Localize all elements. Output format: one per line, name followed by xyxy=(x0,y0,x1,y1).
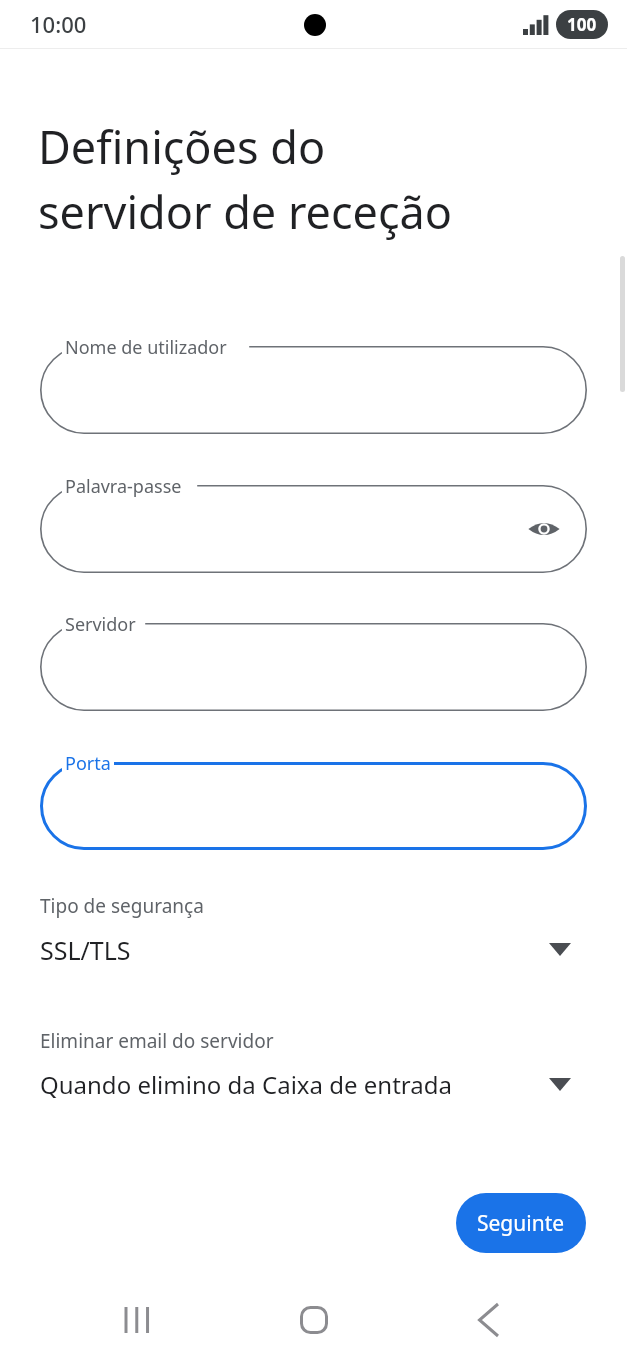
staticText: SSL/TLS xyxy=(40,933,131,967)
staticText: Palavra-passe xyxy=(65,474,182,499)
staticText: Nome de utilizador xyxy=(65,335,227,360)
staticText: Quando elimino da Caixa de entrada xyxy=(40,1068,452,1101)
staticText: Seguinte xyxy=(477,1209,565,1238)
button[interactable] xyxy=(40,485,587,573)
button[interactable]: Seguinte xyxy=(456,1193,586,1253)
button[interactable]: Voltar xyxy=(455,1287,521,1353)
staticText: Eliminar email do servidor xyxy=(40,1028,274,1054)
staticText: 10:00 xyxy=(30,9,87,39)
staticText: Definições do xyxy=(38,116,326,177)
staticText: Tipo de segurança xyxy=(40,893,204,919)
button[interactable] xyxy=(40,346,587,434)
staticText: 100 xyxy=(567,13,597,36)
button[interactable]: Recentes xyxy=(106,1287,172,1353)
button[interactable]: Eliminar email do servidor xyxy=(0,1028,627,1123)
button[interactable] xyxy=(40,623,587,711)
button[interactable]: Mostrar palavra-passe xyxy=(520,505,568,553)
button[interactable]: Tipo de segurança xyxy=(0,893,627,988)
staticText: Porta xyxy=(65,751,111,776)
staticText: servidor de receção xyxy=(38,181,453,242)
button[interactable] xyxy=(40,762,587,850)
button[interactable]: Início xyxy=(281,1287,347,1353)
staticText: Servidor xyxy=(65,612,136,637)
